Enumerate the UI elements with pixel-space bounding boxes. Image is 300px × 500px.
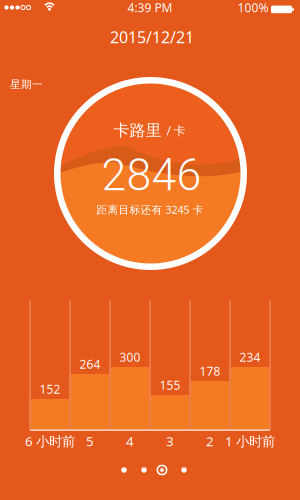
staticText: 100%	[237, 0, 268, 15]
staticText: 1 小时前	[225, 432, 275, 450]
staticText: 卡路里	[113, 121, 161, 140]
button[interactable]: Page 4	[181, 467, 187, 473]
staticText: 2015/12/21	[110, 26, 194, 48]
staticText: 3	[166, 432, 174, 450]
staticText: 152	[39, 381, 60, 397]
staticText: 6 小时前	[25, 432, 75, 450]
staticText: 264	[79, 356, 100, 372]
staticText: 2846	[101, 149, 201, 201]
staticText: 300	[119, 349, 140, 365]
staticText: 距离目标还有 3245 卡	[96, 202, 203, 217]
button[interactable]: Page 3, current page	[156, 464, 167, 475]
staticText: 2	[206, 432, 214, 450]
staticText: 5	[86, 432, 94, 450]
staticText: 178	[199, 363, 220, 379]
staticText: 155	[159, 377, 180, 393]
staticText: 4	[126, 432, 134, 450]
staticText: / 卡	[166, 122, 185, 138]
staticText: 234	[239, 349, 260, 365]
staticText: 星期一	[10, 78, 43, 91]
staticText: 4:39 PM	[127, 0, 172, 15]
button[interactable]: Page 1	[121, 467, 127, 473]
button[interactable]: Page 2	[141, 467, 147, 473]
